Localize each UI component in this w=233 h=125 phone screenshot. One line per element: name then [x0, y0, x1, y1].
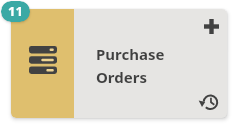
button[interactable]: History — [191, 87, 225, 115]
staticText: Purchase Orders — [96, 44, 165, 87]
staticText: 11 — [8, 2, 23, 20]
button[interactable]: Purchase Orders — [11, 9, 227, 118]
button[interactable]: 11 — [1, 1, 30, 22]
button[interactable]: Add — [194, 13, 227, 40]
